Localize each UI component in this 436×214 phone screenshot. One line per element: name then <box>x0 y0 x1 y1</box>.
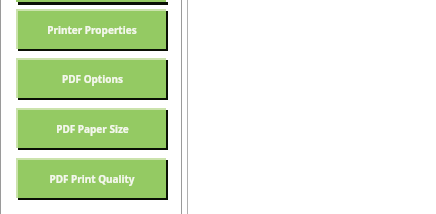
staticText: PDF Print Quality <box>49 172 135 186</box>
staticText: PDF Options <box>62 72 123 86</box>
button[interactable]: PDF Paper Size <box>16 108 168 150</box>
button[interactable]: PDF Print Quality <box>16 158 168 200</box>
staticText: PDF Paper Size <box>56 122 129 136</box>
button[interactable]: PDF Options <box>16 58 168 100</box>
button[interactable] <box>16 0 168 5</box>
button[interactable]: Printer Properties <box>16 9 168 51</box>
staticText: Printer Properties <box>47 23 137 37</box>
